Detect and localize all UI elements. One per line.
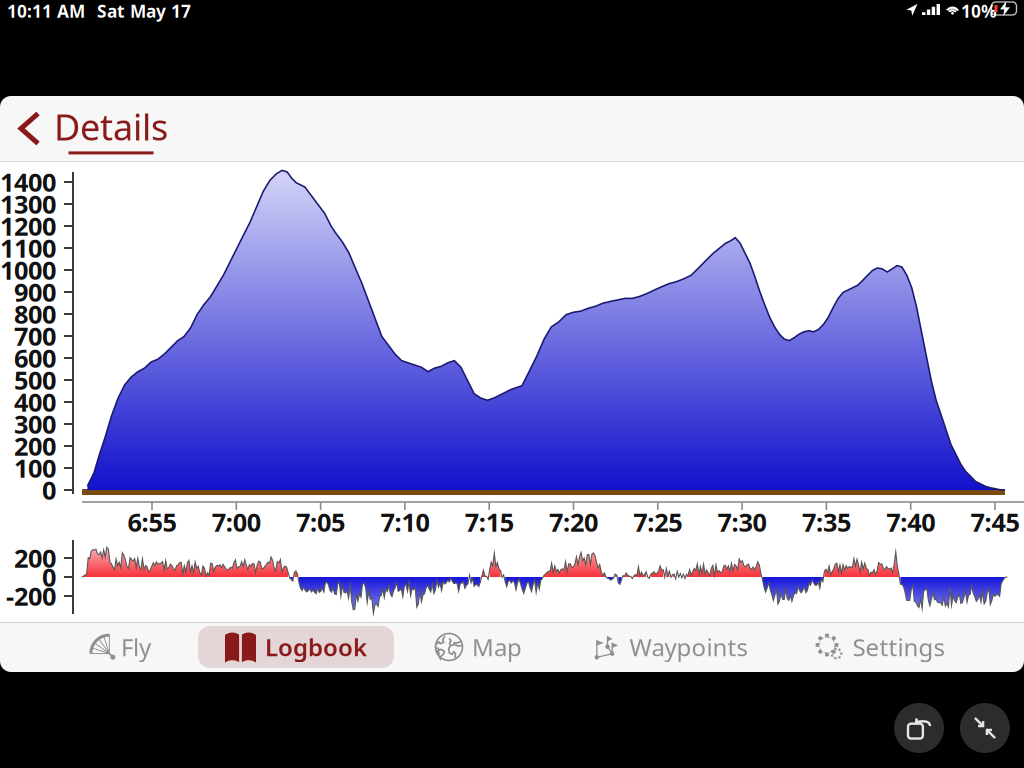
staticText: 1300 [0,187,56,221]
staticText: 200 [14,541,56,575]
staticText: 7:15 [465,505,514,539]
staticText: 0 [42,560,56,594]
staticText: 7:10 [380,505,429,539]
staticText: 6:55 [127,505,176,539]
staticText: 600 [14,341,56,375]
staticText: 0 [42,473,56,507]
staticText: 1000 [0,253,56,287]
button[interactable]: Fly [52,626,189,668]
button[interactable]: Rotate [894,703,944,753]
staticText: 7:35 [802,505,851,539]
staticText: Waypoints [629,631,747,663]
staticText: Details [54,103,168,150]
staticText: 7:30 [718,505,767,539]
staticText: 7:25 [633,505,682,539]
staticText: Settings [852,631,944,663]
staticText: 1400 [0,165,56,199]
staticText: 7:00 [212,505,261,539]
staticText: 100 [14,451,56,485]
staticText: 800 [14,297,56,331]
staticText: 200 [14,429,56,463]
staticText: 7:05 [296,505,345,539]
staticText: -200 [6,579,56,613]
button[interactable]: Logbook [198,626,394,668]
staticText: 300 [14,407,56,441]
button[interactable]: Settings [785,626,975,668]
staticText: 1200 [0,209,56,243]
button[interactable]: Minimize [960,703,1010,753]
staticText: Fly [121,631,151,663]
staticText: Logbook [265,631,367,663]
staticText: 400 [14,385,56,419]
staticText: 900 [14,275,56,309]
button[interactable]: Details [0,103,168,154]
staticText: 700 [14,319,56,353]
staticText: 1100 [0,231,56,265]
staticText: 7:20 [549,505,598,539]
staticText: 10% [961,0,997,22]
staticText: 10:11 AM [7,0,85,22]
staticText: 500 [14,363,56,397]
button[interactable]: Map [402,626,555,668]
staticText: 7:40 [886,505,935,539]
staticText: Sat May 17 [97,0,191,22]
staticText: Map [472,631,522,663]
button[interactable]: Waypoints [568,626,774,668]
staticText: 7:45 [970,505,1019,539]
